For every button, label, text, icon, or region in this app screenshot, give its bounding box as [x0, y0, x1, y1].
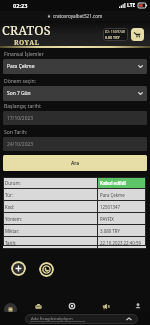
- staticText: 12501347: [100, 204, 121, 210]
- button[interactable]: 17/10/2023: [3, 111, 147, 125]
- button[interactable]: Son 7 Gün: [3, 86, 147, 101]
- button[interactable]: Add: [11, 261, 26, 276]
- button[interactable]: 24/10/2023: [3, 137, 147, 151]
- staticText: 22.10.2023 22:40:59: [100, 240, 142, 246]
- staticText: Para Çekme: [7, 63, 138, 70]
- staticText: CRATOS: [2, 22, 51, 39]
- staticText: cratosroyalbet521.com: [53, 13, 103, 19]
- staticText: Para Çekme: [100, 192, 125, 198]
- staticText: Durum:: [5, 180, 21, 186]
- button[interactable]: Sports: [63, 299, 81, 313]
- staticText: ID: 1509748: [105, 29, 126, 34]
- button[interactable]: Ara: [3, 155, 147, 171]
- staticText: Ada İtsagibstakpkpm: [31, 316, 73, 322]
- other: Expand: [125, 315, 133, 323]
- staticText: Tarih:: [5, 240, 17, 246]
- staticText: Başlangıç tarihi:: [4, 103, 42, 110]
- button[interactable]: Casino: [29, 299, 47, 313]
- staticText: 0.00 TRY: [105, 35, 120, 40]
- staticText: Tür:: [5, 192, 13, 198]
- staticText: Son 7 Gün: [7, 90, 138, 97]
- staticText: 24/10/2023: [7, 141, 34, 148]
- button[interactable]: Menu: [4, 303, 17, 316]
- button[interactable]: Promotions: [96, 299, 114, 313]
- staticText: Yöntem:: [5, 216, 22, 222]
- button[interactable]: WhatsApp: [39, 262, 54, 277]
- staticText: 17/10/2023: [7, 115, 34, 122]
- staticText: Son Tarih:: [4, 129, 28, 136]
- button[interactable]: Ada İtsagibstakpkpm: [25, 314, 138, 324]
- staticText: Dönem seçin:: [4, 78, 36, 85]
- staticText: Ara: [71, 160, 80, 167]
- staticText: 3.080 TRY: [100, 228, 121, 234]
- staticText: ROYAL: [14, 38, 40, 47]
- staticText: LTE: [127, 2, 136, 9]
- button[interactable]: Para Çekme: [3, 59, 147, 74]
- button[interactable]: Profile: [129, 299, 147, 313]
- staticText: Kabul edildi: [100, 180, 126, 186]
- staticText: PAYFIX: [100, 216, 114, 222]
- button[interactable]: ID: 1509748: [103, 28, 128, 41]
- staticText: Finansal İşlemler: [4, 51, 44, 58]
- staticText: 02:23: [13, 2, 28, 10]
- button[interactable]: Deposit: [131, 28, 144, 41]
- staticText: Miktar:: [5, 228, 20, 234]
- staticText: Kod:: [5, 204, 15, 210]
